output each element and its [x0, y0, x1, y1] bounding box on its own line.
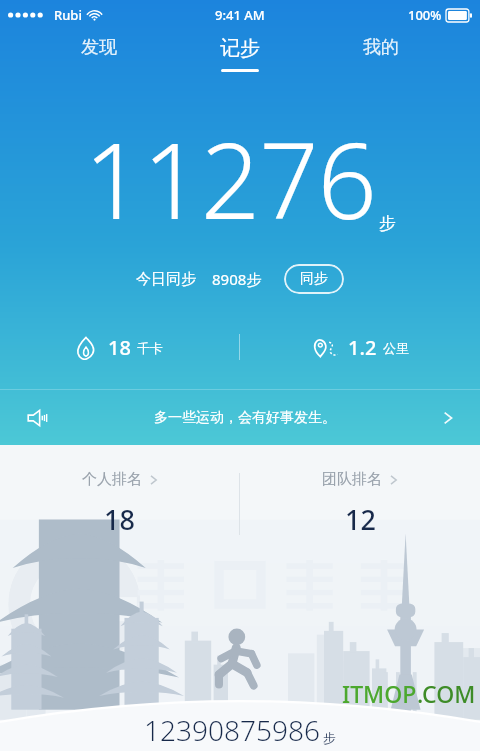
staticText: 11276 [84, 108, 376, 250]
staticText: 个人排名 [82, 470, 142, 489]
staticText: 团队排名 [322, 470, 382, 489]
button[interactable]: 我的 [340, 30, 422, 76]
staticText: 1.2 [348, 334, 377, 361]
staticText: 今日同步 [136, 270, 196, 289]
staticText: Rubi [54, 6, 82, 24]
staticText: 18 [108, 334, 131, 361]
staticText: 记步 [220, 36, 260, 61]
staticText: 同步 [300, 270, 328, 288]
button[interactable]: 团队排名 [240, 470, 480, 538]
staticText: 12390875986 [144, 711, 320, 749]
staticText: 12 [345, 501, 376, 538]
button[interactable]: 同步 [284, 264, 344, 294]
staticText: 我的 [363, 36, 399, 59]
button[interactable]: 发现 [58, 30, 140, 76]
staticText: 多一些运动，会有好事发生。 [48, 409, 442, 427]
button[interactable]: 记步 [198, 30, 282, 78]
staticText: 18 [104, 501, 135, 538]
button[interactable]: 1.2 [240, 334, 480, 361]
staticText: 步 [379, 213, 396, 234]
staticText: 发现 [81, 36, 117, 59]
staticText: 100% [408, 6, 442, 24]
button[interactable]: 个人排名 [0, 470, 239, 538]
staticText: 9:41 AM [215, 6, 265, 24]
staticText: 千卡 [137, 340, 163, 356]
staticText: .COM [417, 678, 476, 709]
staticText: 8908步 [212, 269, 262, 289]
other: Announcement [26, 409, 48, 427]
button[interactable]: 18 [0, 334, 239, 361]
staticText: 步 [323, 730, 336, 746]
button[interactable]: Announcement [0, 390, 480, 445]
staticText: ITMOP [342, 678, 417, 709]
other: More [442, 409, 454, 427]
staticText: 公里 [383, 340, 409, 356]
